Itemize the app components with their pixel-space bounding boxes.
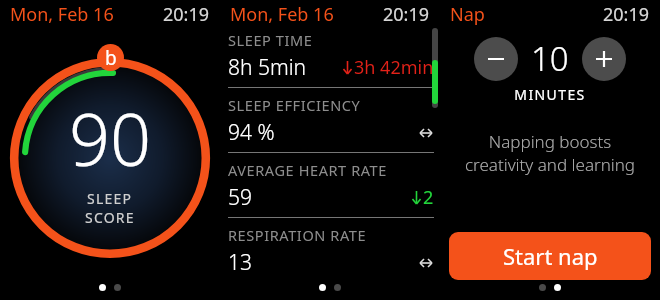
- staticText: 59: [228, 183, 252, 212]
- staticText: 2: [423, 185, 434, 210]
- staticText: SLEEP TIME: [228, 30, 313, 50]
- staticText: 20:19: [603, 2, 650, 27]
- button[interactable]: SLEEP TIME: [220, 30, 440, 95]
- other: No change: [418, 127, 434, 139]
- staticText: SCORE: [85, 208, 135, 227]
- staticText: Nap: [450, 2, 485, 27]
- staticText: MINUTES: [440, 85, 660, 104]
- staticText: RESPIRATION RATE: [228, 225, 367, 245]
- button[interactable]: RESPIRATION RATE: [220, 225, 440, 282]
- other: No change: [418, 257, 434, 269]
- button[interactable]: Beddit: [97, 44, 124, 71]
- staticText: 20:19: [163, 2, 210, 27]
- staticText: 13: [228, 248, 252, 277]
- button[interactable]: Decrease minutes: [474, 37, 518, 81]
- staticText: 94 %: [228, 118, 275, 147]
- staticText: 20:19: [383, 2, 430, 27]
- staticText: SLEEP: [87, 189, 133, 208]
- button[interactable]: AVERAGE HEART RATE: [220, 160, 440, 225]
- staticText: 8h 5min: [228, 53, 307, 82]
- staticText: b: [105, 45, 117, 71]
- staticText: Mon, Feb 16: [10, 2, 114, 27]
- staticText: Start nap: [503, 241, 598, 271]
- staticText: Napping boosts creativity and learning: [446, 130, 654, 176]
- staticText: 90: [69, 89, 152, 187]
- staticText: Mon, Feb 16: [230, 2, 334, 27]
- staticText: 3h 42min: [354, 55, 434, 80]
- button[interactable]: Start nap: [449, 232, 651, 280]
- staticText: 10: [531, 36, 569, 81]
- staticText: AVERAGE HEART RATE: [228, 160, 387, 180]
- staticText: SLEEP EFFICIENCY: [228, 95, 361, 115]
- button[interactable]: SLEEP EFFICIENCY: [220, 95, 440, 160]
- button[interactable]: Increase minutes: [582, 37, 626, 81]
